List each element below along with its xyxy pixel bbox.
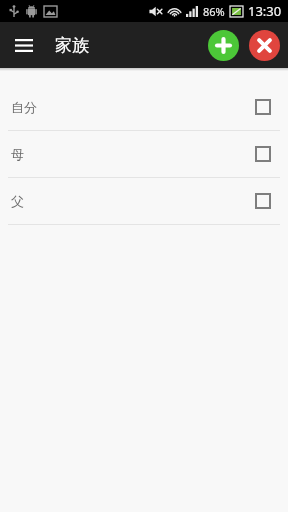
button[interactable]: 母: [0, 131, 288, 177]
button[interactable]: Add: [208, 30, 239, 61]
button[interactable]: Close: [249, 30, 280, 61]
button[interactable]: 父: [0, 178, 288, 224]
staticText: 自分: [11, 99, 37, 115]
staticText: 父: [11, 193, 24, 209]
staticText: 母: [11, 146, 24, 162]
staticText: 86%: [203, 4, 225, 19]
button[interactable]: 自分: [0, 84, 288, 130]
button[interactable]: Menu: [6, 27, 42, 63]
staticText: 13:30: [248, 2, 282, 20]
staticText: 家族: [55, 35, 89, 56]
